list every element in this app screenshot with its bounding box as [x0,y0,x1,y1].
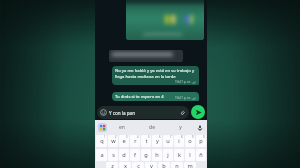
button[interactable]: q [96,135,107,147]
staticText: y [156,137,159,145]
button[interactable]: i [174,135,184,147]
button[interactable]: b [158,162,170,168]
staticText: Tu dirás si te espero en 4 [115,94,164,100]
staticText: 9 [192,135,194,139]
staticText: 10:41 p. m. [175,96,191,100]
staticText: j [167,151,169,159]
staticText: i [178,137,180,145]
staticText: b [162,162,166,168]
button[interactable]: k [174,149,184,161]
button[interactable]: s [108,149,118,161]
button[interactable]: de [137,121,166,133]
button[interactable]: Voice input [195,123,204,132]
button[interactable]: r [130,135,140,147]
staticText: a [100,151,104,159]
button[interactable]: Tu dirás si te espero en 4 [112,92,199,101]
staticText: r [134,137,137,145]
staticText: h [155,151,159,159]
staticText: d [122,151,126,159]
button[interactable]: m [184,162,196,168]
staticText: k [178,151,181,159]
button[interactable]: Send [191,105,205,119]
staticText: 4 [137,135,139,139]
staticText: No ya me habló y ya está en su trabajo y… [115,68,196,80]
staticText: en [119,124,125,131]
button[interactable]: y [152,135,162,147]
button[interactable]: f [130,149,140,161]
button[interactable]: y [166,121,195,133]
button[interactable]: p [196,135,206,147]
staticText: v [150,162,153,168]
staticText: g [144,151,148,159]
staticText: z [111,162,114,168]
staticText: 8 [181,135,183,139]
button[interactable]: o [185,135,195,147]
staticText: Y con la pan [109,110,136,116]
staticText: y [179,124,182,131]
staticText: u [166,137,170,145]
button[interactable]: Google [98,123,107,132]
staticText: 2 [115,135,117,139]
button[interactable]: j [163,149,173,161]
staticText: w [111,137,116,145]
staticText: s [112,151,115,159]
button[interactable]: c [132,162,144,168]
button[interactable]: t [141,135,151,147]
staticText: f [134,151,136,159]
staticText: q [100,137,104,145]
button[interactable]: w [108,135,118,147]
staticText: 6 [159,135,161,139]
other: Emoji [100,109,107,116]
button[interactable]: d [119,149,129,161]
staticText: 10:41 p. m. [175,80,191,84]
other: Attach [179,109,186,116]
button[interactable]: a [96,149,107,161]
staticText: x [124,162,127,168]
staticText: m [187,162,193,168]
button[interactable]: u [163,135,173,147]
button[interactable]: z [106,162,118,168]
button[interactable]: e [119,135,129,147]
button[interactable]: h [152,149,162,161]
button[interactable]: x [119,162,131,168]
staticText: 0 [203,135,205,139]
staticText: c [137,162,140,168]
staticText: 1 [104,135,106,139]
staticText: o [188,137,192,145]
staticText: ñ [199,151,203,159]
staticText: 7 [170,135,172,139]
button[interactable]: n [171,162,183,168]
staticText: n [175,162,179,168]
staticText: t [145,137,148,145]
button[interactable]: v [145,162,157,168]
button[interactable]: Emoji [97,106,189,119]
staticText: de [149,124,155,131]
button[interactable]: No ya me habló y ya está en su trabajo y… [112,66,199,85]
button[interactable]: l [185,149,195,161]
staticText: 3 [126,135,128,139]
staticText: p [199,137,203,145]
staticText: e [122,137,126,145]
staticText: l [189,151,191,159]
staticText: 5 [148,135,150,139]
button[interactable]: en [107,121,137,133]
button[interactable]: g [141,149,151,161]
button[interactable]: ñ [196,149,206,161]
